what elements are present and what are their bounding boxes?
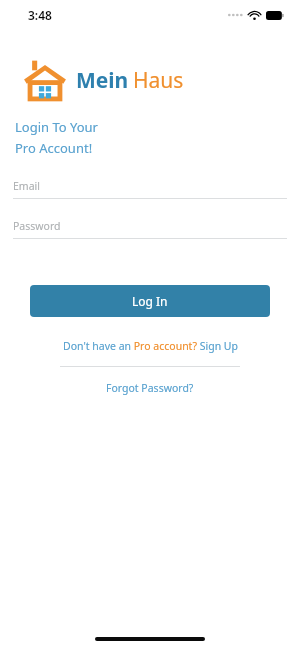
staticText: Login To Your: [15, 118, 98, 136]
staticText: Forgot Password?: [106, 381, 194, 395]
button[interactable]: Don't have an Pro account? Sign Up: [0, 339, 300, 353]
staticText: Email: [13, 179, 40, 193]
staticText: 3:48: [28, 7, 52, 23]
button[interactable]: Log In: [30, 285, 270, 317]
staticText: Password: [13, 219, 61, 233]
button[interactable]: Forgot Password?: [0, 381, 300, 395]
staticText: Don't have an Pro account? Sign Up: [63, 339, 238, 353]
staticText: Log In: [132, 293, 168, 309]
staticText: Pro Account!: [15, 139, 93, 157]
other: Mein Haus logo: [22, 58, 68, 102]
staticText: Mein: [76, 66, 129, 95]
staticText: Haus: [133, 66, 184, 95]
